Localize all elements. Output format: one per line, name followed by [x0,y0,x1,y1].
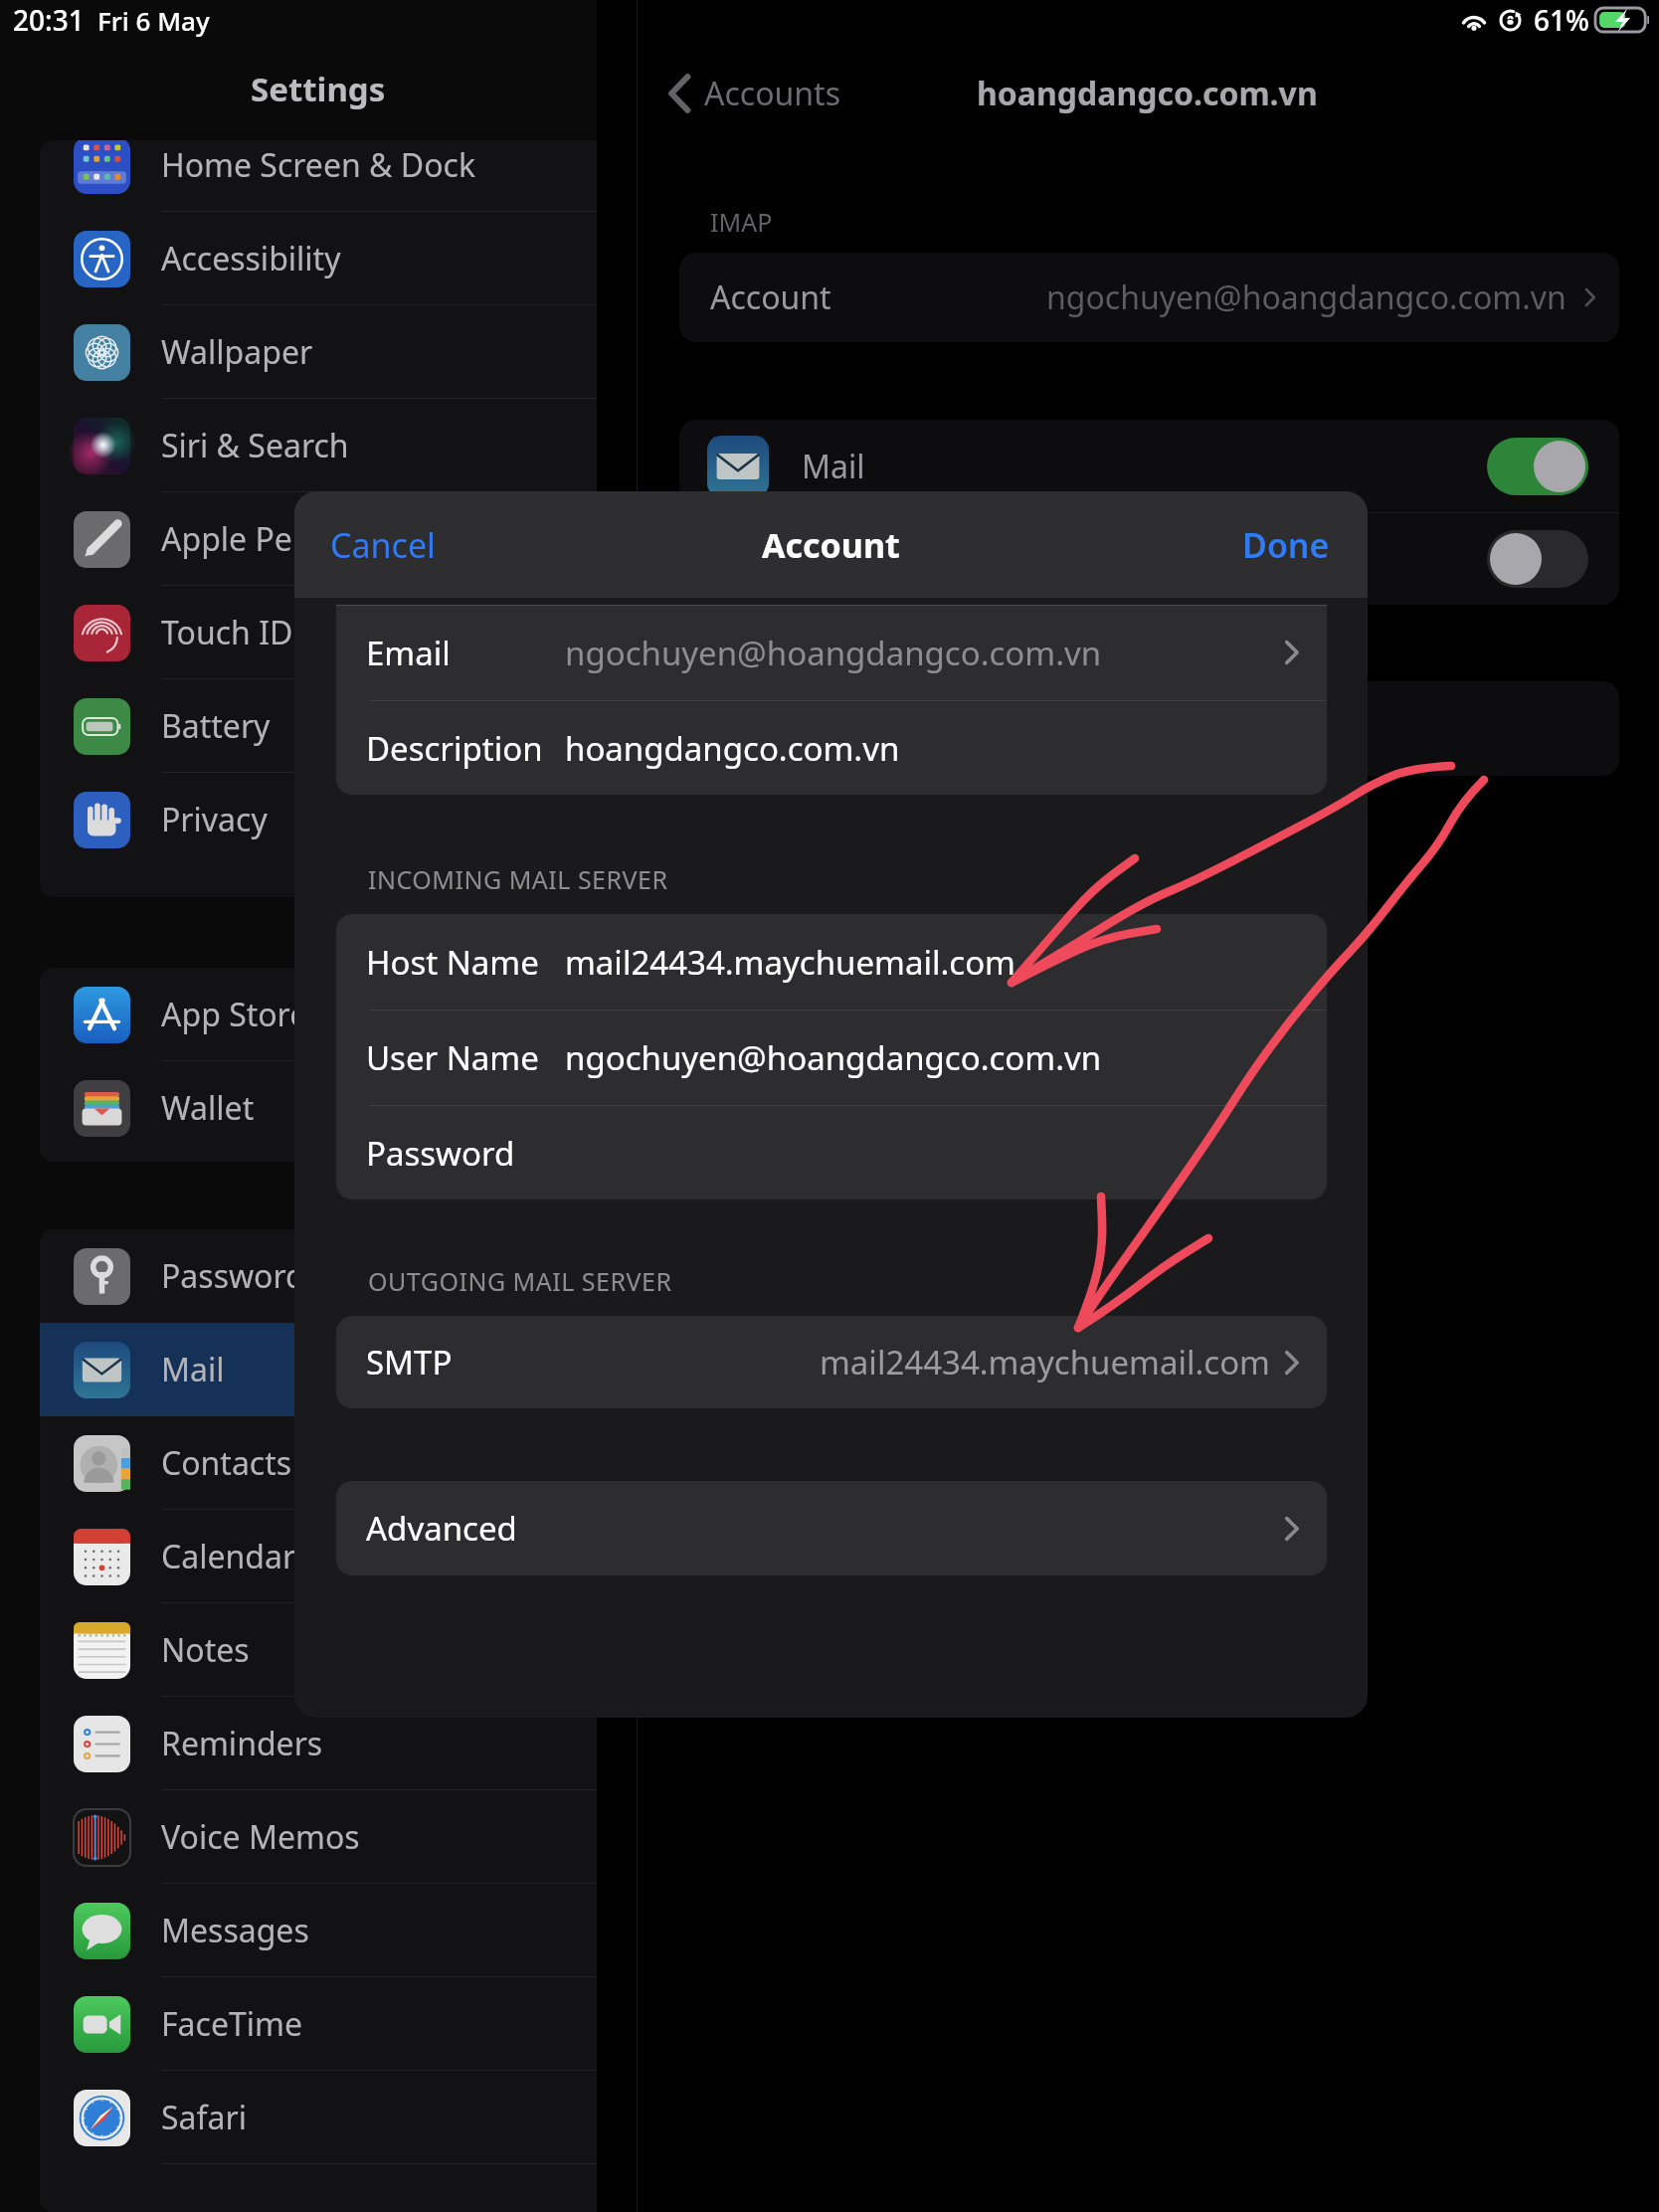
staticText: mail24434.maychuemail.com [820,1340,1270,1384]
staticText: ngochuyen@hoangdangco.com.vn [565,1035,1102,1080]
button[interactable]: Mail enabled [1487,438,1588,495]
staticText: SMTP [366,1340,453,1384]
button[interactable]: Home Screen & Dock [40,140,597,212]
button[interactable]: User Name [336,1011,1327,1105]
staticText: Fri 6 May [97,3,210,38]
staticText: Mail [161,1348,225,1391]
button[interactable]: Voice Memos [40,1790,597,1884]
staticText: OUTGOING MAIL SERVER [368,1264,672,1298]
staticText: 20:31 [13,1,85,39]
button[interactable]: FaceTime [40,1977,597,2071]
button[interactable]: Notes [679,513,1619,605]
staticText: Email [366,631,451,675]
staticText: INCOMING MAIL SERVER [368,862,668,896]
staticText: Calendar [161,1535,296,1578]
staticText: ngochuyen@hoangdangco.com.vn [1046,276,1567,319]
button[interactable]: Battery [40,679,597,773]
staticText: Description [366,726,543,771]
staticText: Reminders [161,1722,323,1765]
staticText: Contacts [161,1441,292,1485]
staticText: Passwords & Accounts [161,1254,497,1298]
button[interactable]: Messages [40,1884,597,1977]
staticText: Password [366,1131,515,1176]
staticText: Accessibility [161,237,341,280]
button[interactable]: Accessibility [40,212,597,305]
staticText: hoangdangco.com.vn [977,72,1318,115]
staticText: Privacy [161,798,268,841]
button[interactable]: Done [1222,512,1368,578]
button[interactable]: SMTP [336,1316,1327,1408]
button[interactable]: Email [336,605,1327,700]
staticText: Voice Memos [161,1815,360,1859]
button[interactable]: Wallpaper [40,305,597,399]
staticText: Wallet [161,1086,255,1130]
staticText: hoangdangco.com.vn [565,726,900,771]
staticText: App Store [161,993,308,1036]
button[interactable]: Passwords & Accounts [40,1229,597,1323]
button[interactable]: Reminders [40,1697,597,1790]
staticText: Mail [802,445,865,488]
staticText: Notes [161,1628,250,1672]
staticText: Wallpaper [161,330,313,374]
button[interactable]: Back to Accounts [662,66,846,121]
staticText: mail24434.maychuemail.com [565,940,1015,985]
staticText: IMAP [710,205,773,239]
staticText: ngochuyen@hoangdangco.com.vn [565,631,1102,675]
button[interactable]: Description [336,701,1327,795]
staticText: Touch ID & Passcode [161,611,472,654]
button[interactable]: Host Name [336,914,1327,1010]
button[interactable]: Mail [40,1323,597,1416]
staticText: User Name [366,1035,539,1080]
staticText: Apple Pencil [161,517,344,561]
staticText: Host Name [366,940,539,985]
staticText: 61% [1534,1,1589,39]
staticText: Messages [161,1909,309,1952]
button[interactable]: Mail [679,420,1619,512]
staticText: Account [710,276,831,319]
staticText: Account [762,522,900,568]
staticText: FaceTime [161,2002,302,2046]
staticText: Battery [161,704,271,748]
button[interactable]: App Store [40,968,597,1061]
button[interactable]: Apple Pencil [40,492,597,586]
staticText: Home Screen & Dock [161,143,475,187]
button[interactable]: Calendar [40,1510,597,1603]
button[interactable]: Siri & Search [40,399,597,492]
button[interactable]: Advanced [336,1481,1327,1575]
button[interactable]: Privacy [40,773,597,866]
staticText: Accounts [704,72,840,115]
button[interactable]: Touch ID & Passcode [40,586,597,679]
button[interactable]: Safari [40,2071,597,2164]
button[interactable]: Wallet [40,1061,597,1155]
button[interactable]: Password [336,1106,1327,1199]
button[interactable]: Notes [40,1603,597,1697]
button[interactable]: Delete Account [679,681,1619,776]
staticText: Siri & Search [161,424,349,467]
staticText: Safari [161,2096,247,2139]
button[interactable]: Account [679,253,1619,342]
button[interactable]: Contacts [40,1416,597,1510]
button[interactable]: Cancel [294,512,456,578]
staticText: Settings [251,67,386,111]
button[interactable]: Notes off [1487,530,1588,588]
staticText: Advanced [366,1506,517,1551]
